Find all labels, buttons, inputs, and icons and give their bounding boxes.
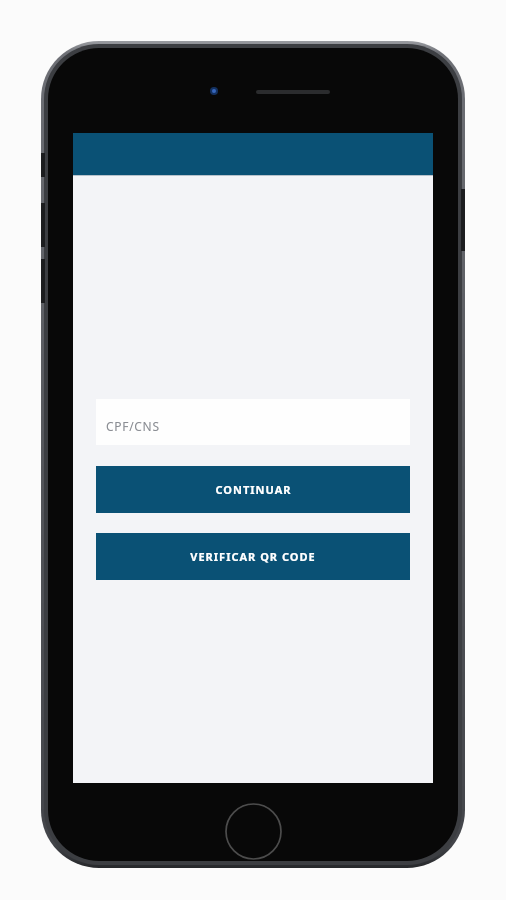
staticText: CONTINUAR [215,482,292,497]
button[interactable]: CONTINUAR [96,466,410,513]
button[interactable]: VERIFICAR QR CODE [96,533,410,580]
staticText: CPF/CNS [106,418,160,434]
staticText: VERIFICAR QR CODE [190,549,316,564]
button[interactable]: CPF/CNS [96,399,410,445]
